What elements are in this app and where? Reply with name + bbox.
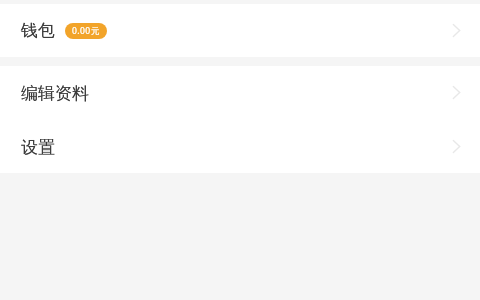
other: Open 编辑资料 (452, 86, 461, 99)
button[interactable]: 编辑资料 (0, 66, 480, 119)
staticText: 编辑资料 (21, 83, 89, 104)
staticText: 设置 (21, 137, 55, 158)
button[interactable]: 钱包 (0, 4, 480, 57)
staticText: 钱包 (21, 20, 55, 41)
staticText: 钱包 (21, 20, 55, 41)
staticText: 设置 (21, 137, 55, 158)
staticText: 编辑资料 (21, 83, 89, 104)
other: Open 设置 (452, 140, 461, 153)
button[interactable]: 设置 (0, 119, 480, 173)
other: Open 钱包 (452, 24, 461, 37)
staticText: 0.00元 (72, 25, 100, 37)
